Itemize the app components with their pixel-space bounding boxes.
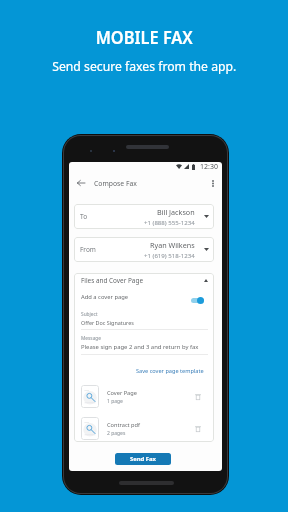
other: Delete	[195, 425, 201, 432]
staticText: Add a cover page	[81, 293, 129, 301]
button[interactable]: To	[74, 204, 214, 229]
button[interactable]: Contract pdf	[81, 417, 201, 440]
button[interactable]: More options	[207, 177, 219, 189]
button[interactable]: Cover Page	[81, 385, 201, 408]
staticText: MOBILE FAX	[96, 24, 193, 49]
other: Delete	[195, 393, 201, 400]
staticText: From	[80, 245, 96, 254]
staticText: 12:30	[200, 162, 218, 172]
staticText: 2 pages	[107, 430, 126, 437]
staticText: To	[80, 212, 88, 221]
staticText: Subject	[81, 311, 98, 318]
staticText: Cover Page	[107, 389, 137, 397]
staticText: Files and Cover Page	[81, 276, 143, 285]
staticText: Contract pdf	[107, 421, 140, 429]
button[interactable]: Add a cover page	[74, 288, 214, 306]
staticText: Offer Doc Signatures	[81, 319, 134, 326]
staticText: Ryan Wilkens	[150, 240, 195, 250]
staticText: Message	[81, 335, 101, 342]
button[interactable]: Send Fax	[115, 453, 171, 465]
button[interactable]: Save cover page template	[136, 367, 204, 375]
staticText: Bill Jackson	[157, 207, 195, 217]
staticText: +1 (888) 555-1234	[144, 218, 195, 226]
button[interactable]: Back	[74, 176, 88, 190]
staticText: Send Fax	[130, 455, 157, 463]
staticText: Save cover page template	[136, 367, 204, 375]
staticText: 1 page	[107, 398, 123, 405]
button[interactable]: Files and Cover Page	[74, 273, 214, 288]
staticText: Compose Fax	[94, 179, 137, 188]
button[interactable]: From	[74, 237, 214, 262]
staticText: Send secure faxes from the app.	[52, 57, 237, 75]
staticText: +1 (619) 518-1234	[144, 251, 195, 259]
staticText: Please sign page 2 and 3 and return by f…	[81, 343, 199, 351]
